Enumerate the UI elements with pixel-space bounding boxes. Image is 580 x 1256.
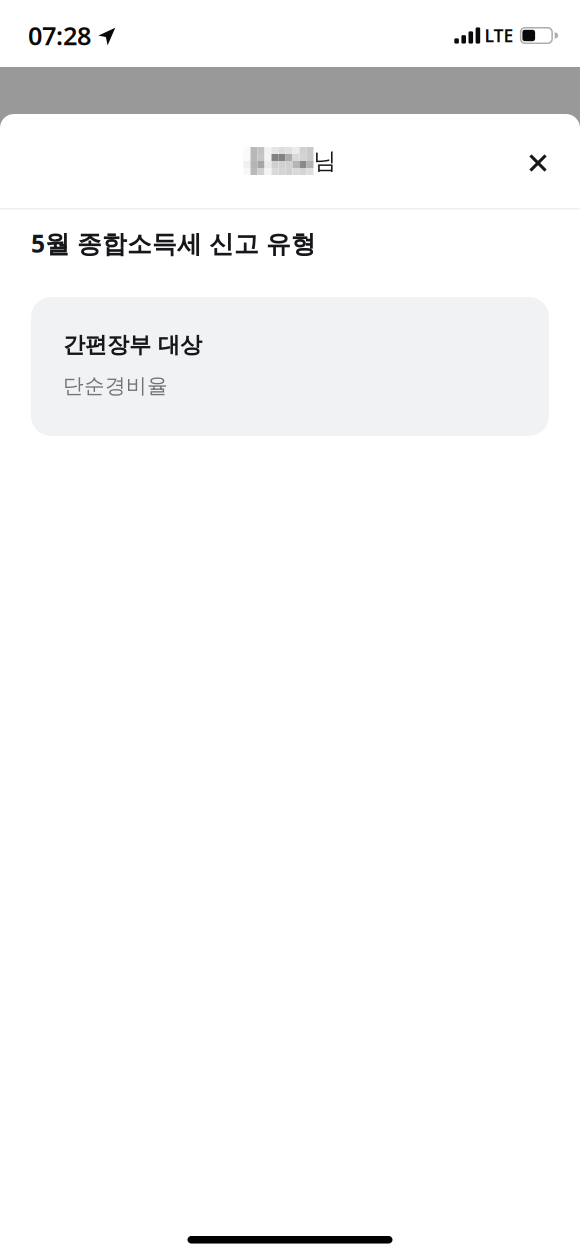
staticText: 5월 종합소득세 신고 유형 bbox=[31, 226, 316, 260]
button[interactable]: Close bbox=[514, 137, 562, 185]
button[interactable]: 간편장부 대상 bbox=[31, 297, 549, 436]
staticText: 님 bbox=[313, 147, 336, 175]
staticText: 단순경비율 bbox=[63, 373, 168, 399]
staticText: 07:28 bbox=[28, 18, 91, 53]
staticText: LTE bbox=[484, 23, 513, 47]
staticText: 간편장부 대상 bbox=[63, 331, 202, 359]
